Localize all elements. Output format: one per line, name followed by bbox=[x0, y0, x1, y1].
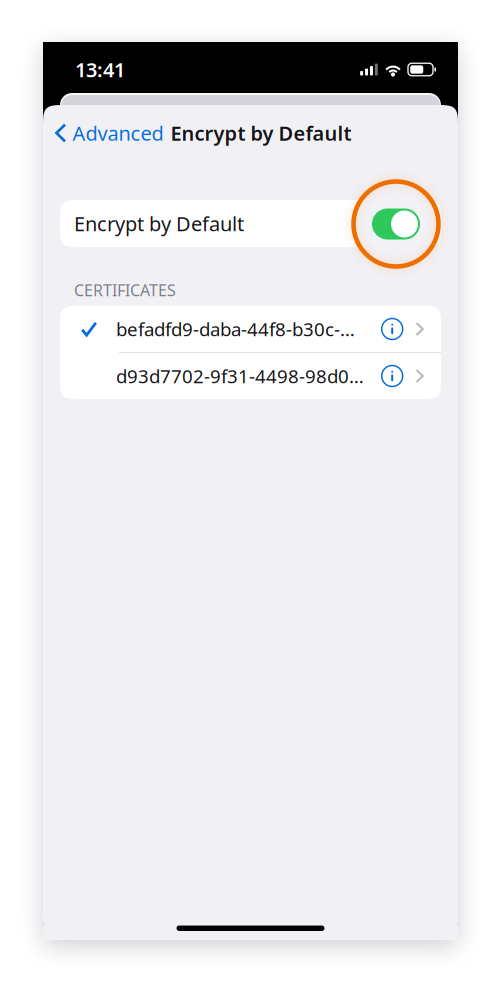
button[interactable]: Advanced bbox=[43, 111, 169, 155]
button[interactable]: befadfd9-daba-44f8-b30c-… bbox=[60, 306, 441, 352]
staticText: Encrypt by Default bbox=[170, 120, 351, 146]
staticText: 13:41 bbox=[75, 56, 125, 83]
button[interactable]: Encrypt by Default bbox=[60, 200, 441, 247]
button[interactable]: d93d7702-9f31-4498-98d0… bbox=[60, 353, 441, 399]
staticText: d93d7702-9f31-4498-98d0… bbox=[116, 364, 364, 388]
staticText: befadfd9-daba-44f8-b30c-… bbox=[116, 317, 355, 341]
staticText: Encrypt by Default bbox=[74, 210, 244, 237]
staticText: CERTIFICATES bbox=[74, 279, 176, 301]
staticText: Advanced bbox=[72, 120, 163, 146]
button[interactable]: Encrypt by Default toggle bbox=[372, 208, 420, 239]
